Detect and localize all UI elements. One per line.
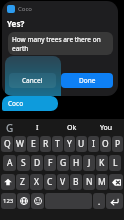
staticText: Yes? xyxy=(7,18,25,29)
staticText: Z xyxy=(20,176,25,188)
staticText: Y xyxy=(67,138,72,150)
staticText: M xyxy=(98,176,106,188)
button[interactable]: Z xyxy=(16,174,29,190)
button[interactable]: Language xyxy=(17,193,30,209)
staticText: V xyxy=(60,176,66,188)
staticText: R xyxy=(43,138,49,150)
staticText: O xyxy=(102,138,109,150)
button[interactable]: S xyxy=(17,155,30,171)
button[interactable]: J xyxy=(83,155,95,171)
button[interactable]: G xyxy=(57,155,69,171)
button[interactable]: E xyxy=(27,136,39,152)
button[interactable]: Coco xyxy=(2,96,58,111)
button[interactable]: O xyxy=(100,136,111,152)
staticText: G xyxy=(6,121,14,135)
staticText: X xyxy=(34,176,39,188)
staticText: A xyxy=(7,157,13,169)
staticText: Coco xyxy=(18,5,32,13)
button[interactable]: I xyxy=(20,119,54,136)
button[interactable]: W xyxy=(14,136,26,152)
staticText: Cancel xyxy=(22,76,43,85)
button[interactable]: Backspace xyxy=(109,174,123,190)
button[interactable]: C xyxy=(44,174,56,190)
button[interactable]: 123 xyxy=(1,193,16,209)
button[interactable]: I xyxy=(88,136,99,152)
button[interactable]: K xyxy=(96,155,108,171)
button[interactable]: M xyxy=(96,174,108,190)
staticText: K xyxy=(99,157,105,169)
button[interactable]: R xyxy=(40,136,51,152)
staticText: I xyxy=(92,138,95,150)
staticText: . xyxy=(98,196,101,207)
staticText: E xyxy=(31,138,36,150)
button[interactable]: P xyxy=(112,136,123,152)
staticText: C xyxy=(47,176,53,188)
staticText: U xyxy=(78,138,85,150)
staticText: B xyxy=(73,176,79,188)
staticText: L xyxy=(113,157,118,169)
button[interactable]: Emoji xyxy=(31,193,44,209)
staticText: S xyxy=(21,157,26,169)
staticText: N xyxy=(86,176,93,188)
button[interactable]: A xyxy=(3,155,16,171)
staticText: G xyxy=(60,157,67,169)
staticText: How many trees are there on earth xyxy=(12,35,113,53)
button[interactable]: X xyxy=(30,174,43,190)
button[interactable]: D xyxy=(31,155,43,171)
button[interactable]: Google xyxy=(0,119,20,136)
button[interactable]: . xyxy=(93,193,105,209)
staticText: 123 xyxy=(3,197,14,205)
staticText: W xyxy=(16,138,24,150)
staticText: H xyxy=(73,157,80,169)
staticText: You xyxy=(100,123,113,133)
button[interactable]: Done xyxy=(61,73,113,88)
button[interactable]: Enter xyxy=(106,193,123,209)
button[interactable]: Cancel xyxy=(9,73,56,88)
staticText: Ok xyxy=(67,123,77,133)
button[interactable]: F xyxy=(44,155,56,171)
button[interactable]: T xyxy=(52,136,63,152)
staticText: D xyxy=(34,157,41,169)
staticText: P xyxy=(115,138,121,150)
staticText: F xyxy=(48,157,53,169)
button[interactable]: H xyxy=(70,155,82,171)
staticText: Coco xyxy=(8,99,24,108)
staticText: I xyxy=(36,123,39,133)
button[interactable]: L xyxy=(109,155,121,171)
staticText: J xyxy=(88,157,91,169)
button[interactable]: Ok xyxy=(54,119,89,136)
button[interactable]: Y xyxy=(64,136,75,152)
button[interactable]: V xyxy=(57,174,69,190)
staticText: Done xyxy=(79,76,96,85)
staticText: T xyxy=(55,138,60,150)
button[interactable]: B xyxy=(70,174,82,190)
staticText: Q xyxy=(4,138,11,150)
button[interactable]: N xyxy=(83,174,95,190)
button[interactable]: You xyxy=(89,119,124,136)
button[interactable]: U xyxy=(76,136,87,152)
button[interactable]: Q xyxy=(1,136,13,152)
button[interactable]: Shift xyxy=(1,174,15,190)
